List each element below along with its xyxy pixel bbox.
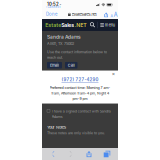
button[interactable]: Search [90,23,95,27]
button[interactable]: I have a signed contract with Sandra [42,109,118,119]
button[interactable]: Close [111,72,115,76]
button[interactable]: Back [44,151,62,157]
button[interactable]: Done [42,10,53,15]
staticText: Sandra Adams [47,34,81,40]
staticText: 10:52 [47,2,59,7]
button[interactable]: (972) 727-4290 [61,77,98,82]
button[interactable]: Tabs [98,151,116,157]
staticText: I have a signed contract with Sandra [52,109,111,113]
staticText: Sales [61,22,74,28]
staticText: A [114,11,118,18]
staticText: menu [105,23,115,27]
staticText: Connect [47,5,60,9]
button[interactable]: Share [80,151,98,157]
staticText: estatesales.net [72,12,97,17]
staticText: Your Notes [47,125,66,130]
staticText: 11 am, Afternoon 11 am-4 pm, Night 4 [51,91,109,95]
staticText: Email [50,63,59,68]
staticText: Use the contact information below to [47,50,107,54]
button[interactable]: Share [104,12,108,17]
staticText: Done [46,12,57,17]
staticText: Adams [52,114,63,119]
button[interactable]: Page settings [110,11,118,18]
staticText: reach out. [47,55,63,60]
button[interactable]: menu [100,23,115,27]
staticText: Preferred contact time: Morning 7 am- [49,86,110,90]
staticText: A [110,14,113,18]
staticText: ✕ [112,72,115,77]
button[interactable]: Email [47,62,62,68]
staticText: .NET [74,22,86,28]
staticText: These notes are only visible to you. [47,131,105,135]
staticText: ⌁ [59,2,61,6]
staticText: pm-9 pm [72,96,87,101]
button[interactable]: Estate [45,22,86,28]
staticText: Estate [45,22,61,28]
staticText: Call [68,63,75,68]
button[interactable]: Call [65,62,77,68]
staticText: Allen, TX 75002 [47,41,74,46]
staticText: (972) 727-4290 [61,77,98,82]
